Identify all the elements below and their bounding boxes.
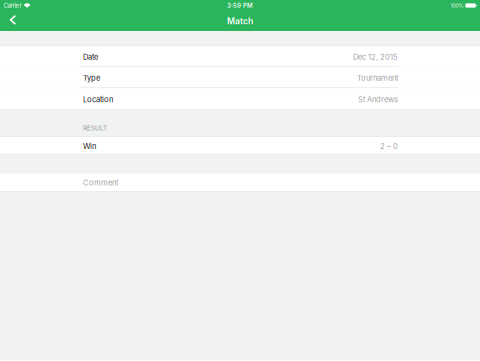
staticText: RESULT bbox=[83, 124, 107, 132]
button[interactable]: Win bbox=[0, 137, 480, 154]
staticText: 100% bbox=[451, 2, 464, 9]
staticText: Match bbox=[227, 16, 253, 26]
button[interactable]: Date bbox=[0, 46, 480, 67]
button[interactable]: Comment bbox=[0, 173, 480, 191]
staticText: Win bbox=[83, 142, 96, 151]
staticText: Location bbox=[83, 95, 113, 104]
staticText: Type bbox=[83, 73, 100, 83]
button[interactable]: Location bbox=[0, 88, 480, 109]
staticText: Date bbox=[83, 52, 98, 61]
button[interactable]: Type bbox=[0, 67, 480, 88]
staticText: Carrier bbox=[3, 2, 21, 9]
staticText: 2 – 0 bbox=[380, 142, 398, 151]
staticText: Tournament bbox=[357, 73, 398, 83]
staticText: Dec 12, 2015 bbox=[353, 52, 398, 61]
staticText: Comment bbox=[83, 178, 118, 187]
staticText: St Andrews bbox=[358, 95, 398, 104]
button[interactable]: Back bbox=[0, 0, 28, 30]
staticText: 3:59 PM bbox=[227, 2, 253, 9]
